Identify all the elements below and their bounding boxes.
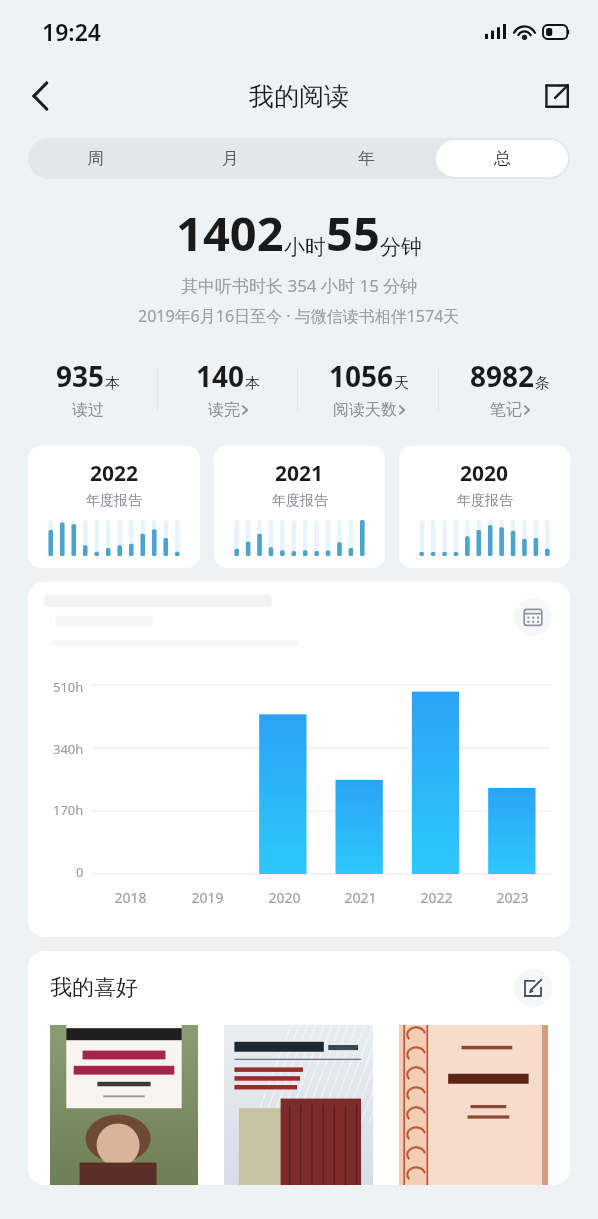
staticText: 分钟 — [380, 234, 422, 260]
staticText: 读过 — [72, 400, 104, 420]
button[interactable]: 935 — [18, 357, 158, 420]
staticText: 其中听书时长 354 小时 15 分钟 — [181, 274, 418, 297]
staticText: 年 — [358, 148, 375, 169]
staticText: 2020 — [268, 888, 301, 907]
staticText: 2020 — [460, 459, 509, 488]
button[interactable]: Select date — [514, 598, 552, 636]
staticText: 2019年6月16日至今 · 与微信读书相伴1574天 — [138, 305, 460, 327]
staticText: 条 — [535, 374, 550, 393]
staticText: 1402 — [176, 201, 284, 265]
button[interactable]: 8982 — [439, 357, 580, 420]
staticText: 170h — [53, 801, 84, 819]
button[interactable]: 2021 — [214, 446, 385, 568]
button[interactable]: 2020 — [399, 446, 570, 568]
staticText: 8982 — [470, 357, 535, 395]
staticText: 小时 — [284, 234, 326, 260]
staticText: 2019 — [191, 888, 224, 907]
staticText: 340h — [53, 740, 84, 758]
button[interactable]: 140 — [158, 357, 298, 420]
button[interactable]: 月 — [165, 140, 296, 177]
staticText: 读完 — [208, 400, 240, 420]
staticText: 55 — [326, 201, 380, 265]
button[interactable]: Edit preferences — [514, 969, 552, 1007]
button[interactable]: Back — [14, 70, 66, 122]
staticText: 2021 — [275, 459, 324, 488]
staticText: 总 — [494, 148, 511, 169]
staticText: 我的喜好 — [50, 974, 138, 1002]
button[interactable]: Share — [532, 71, 582, 121]
button[interactable] — [399, 1025, 548, 1185]
staticText: 本 — [245, 374, 260, 393]
staticText: 510h — [53, 678, 84, 696]
staticText: 935 — [56, 357, 105, 395]
button[interactable] — [224, 1025, 373, 1185]
staticText: 本 — [105, 374, 120, 393]
staticText: 月 — [222, 148, 239, 169]
staticText: 我的阅读 — [249, 81, 349, 112]
staticText: 0 — [76, 863, 84, 881]
staticText: 2022 — [420, 888, 453, 907]
staticText: 周 — [87, 148, 104, 169]
button[interactable]: 总 — [436, 140, 568, 177]
button[interactable] — [50, 1025, 198, 1185]
staticText: 年度报告 — [272, 492, 328, 510]
button[interactable]: 周 — [30, 140, 161, 177]
staticText: 2018 — [114, 888, 147, 907]
staticText: 2022 — [90, 459, 139, 488]
staticText: 年度报告 — [457, 492, 513, 510]
staticText: 140 — [196, 357, 245, 395]
staticText: 天 — [394, 374, 409, 393]
staticText: 笔记 — [490, 400, 522, 420]
staticText: 19:24 — [42, 16, 101, 47]
button[interactable]: 2022 — [28, 446, 200, 568]
staticText: 2023 — [496, 888, 529, 907]
button[interactable]: 1056 — [298, 357, 439, 420]
staticText: 2021 — [344, 888, 377, 907]
staticText: 年度报告 — [86, 492, 142, 510]
button[interactable]: 年 — [300, 140, 432, 177]
staticText: 阅读天数 — [333, 400, 397, 420]
staticText: 1056 — [329, 357, 394, 395]
